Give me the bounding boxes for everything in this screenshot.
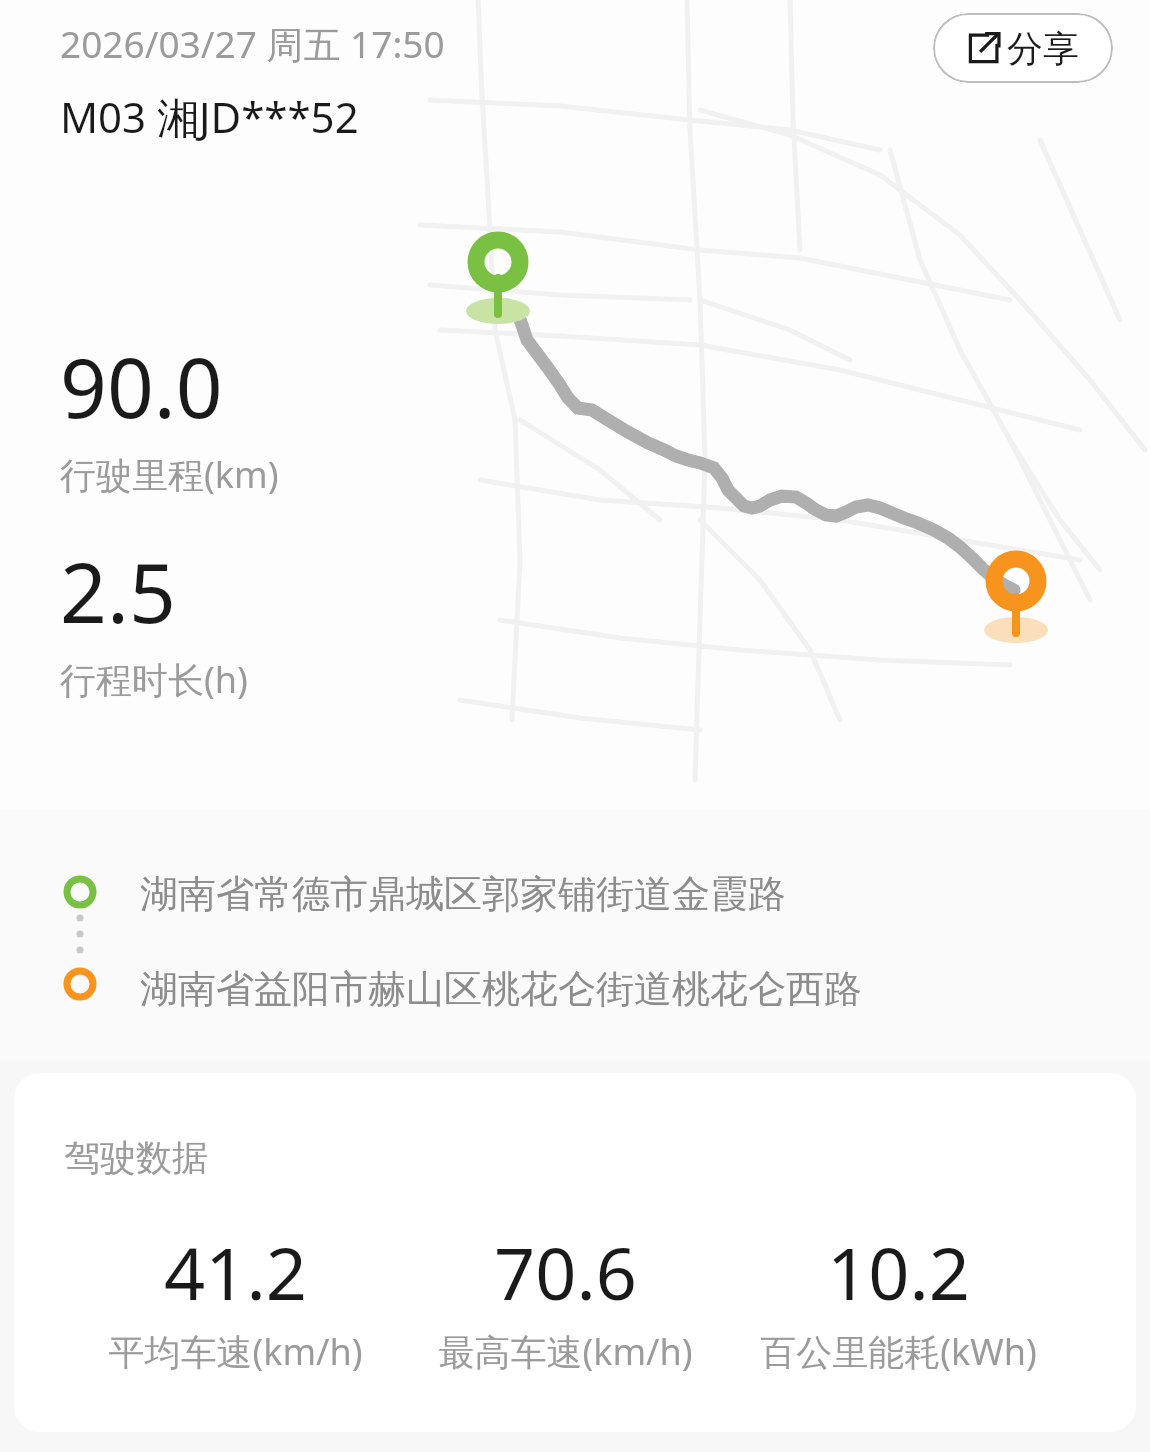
staticText: 行程时长(h) <box>60 655 248 704</box>
staticText: 湖南省益阳市赫山区桃花仑街道桃花仑西路 <box>140 965 862 1013</box>
button[interactable]: 湖南省常德市鼎城区郭家铺街道金霞路 <box>0 810 1150 1060</box>
button[interactable]: 70.6 <box>400 1223 730 1376</box>
staticText: 10.2 <box>827 1223 970 1321</box>
staticText: M03 湘JD***52 <box>60 88 359 145</box>
staticText: 分享 <box>1007 26 1079 71</box>
staticText: 驾驶数据 <box>64 1135 208 1180</box>
button[interactable]: 41.2 <box>70 1223 400 1376</box>
button[interactable]: 分享 <box>933 13 1113 83</box>
button[interactable]: 10.2 <box>733 1223 1063 1376</box>
staticText: 最高车速(km/h) <box>438 1327 693 1376</box>
staticText: 2.5 <box>60 535 176 647</box>
staticText: 平均车速(km/h) <box>108 1327 363 1376</box>
staticText: 41.2 <box>164 1223 307 1321</box>
staticText: 百公里能耗(kWh) <box>760 1327 1037 1376</box>
staticText: 行驶里程(km) <box>60 450 279 499</box>
staticText: 70.6 <box>494 1223 637 1321</box>
staticText: 2026/03/27 周五 17:50 <box>60 18 445 69</box>
staticText: 湖南省常德市鼎城区郭家铺街道金霞路 <box>140 870 786 918</box>
staticText: 90.0 <box>60 330 223 442</box>
